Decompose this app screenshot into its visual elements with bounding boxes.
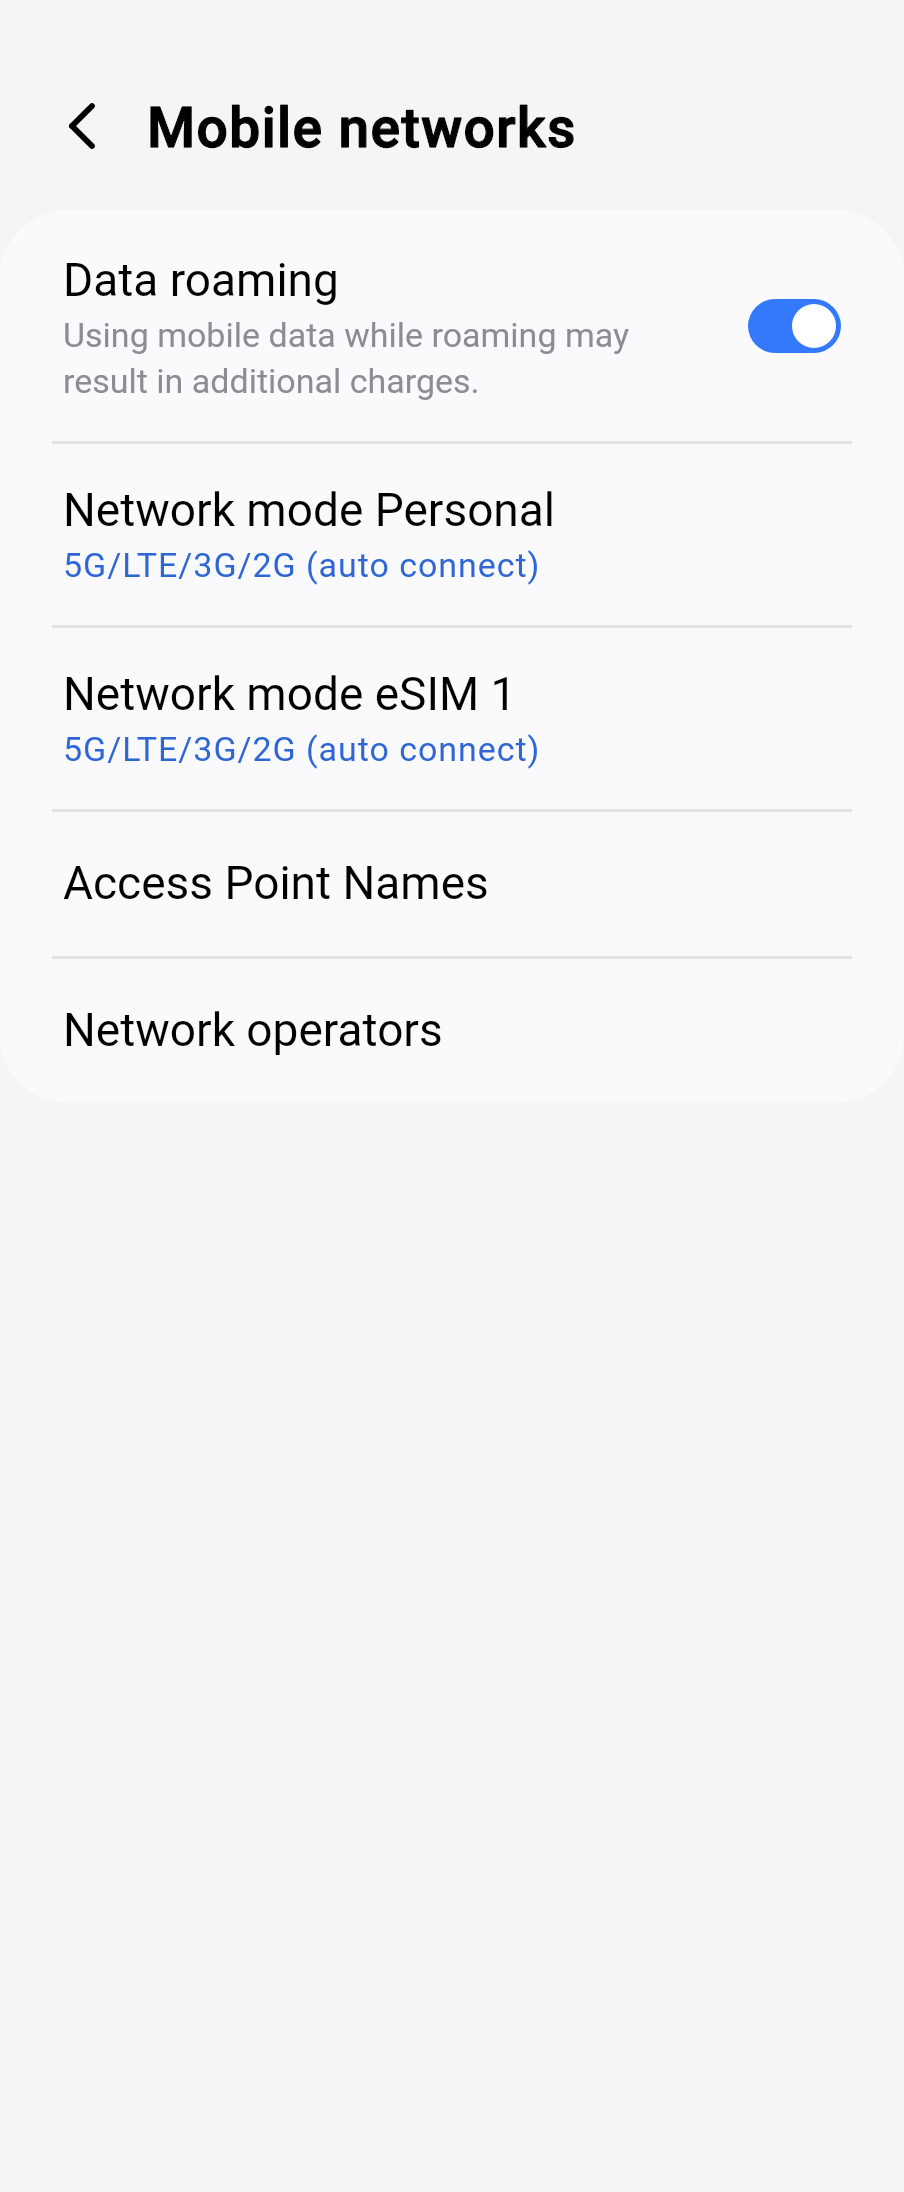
staticText: 5G/LTE/3G/2G (auto connect)	[63, 545, 541, 585]
button[interactable]: Network mode eSIM 1	[0, 628, 904, 809]
button[interactable]: Data roaming on	[748, 299, 841, 353]
button[interactable]: Network mode Personal	[0, 444, 904, 625]
staticText: Access Point Names	[63, 856, 489, 910]
staticText: Data roaming	[63, 253, 339, 307]
staticText: Mobile networks	[147, 96, 577, 160]
staticText: Network operators	[63, 1003, 443, 1057]
button[interactable]: Access Point Names	[0, 812, 904, 956]
button[interactable]: Data roaming	[0, 210, 904, 441]
button[interactable]: Navigate up	[45, 90, 117, 162]
staticText: Network mode Personal	[63, 483, 555, 537]
button[interactable]: Network operators	[0, 959, 904, 1103]
staticText: 5G/LTE/3G/2G (auto connect)	[63, 729, 541, 769]
staticText: Using mobile data while roaming may resu…	[63, 315, 663, 401]
staticText: Mobile networks	[147, 96, 577, 160]
staticText: Network mode eSIM 1	[63, 667, 517, 721]
